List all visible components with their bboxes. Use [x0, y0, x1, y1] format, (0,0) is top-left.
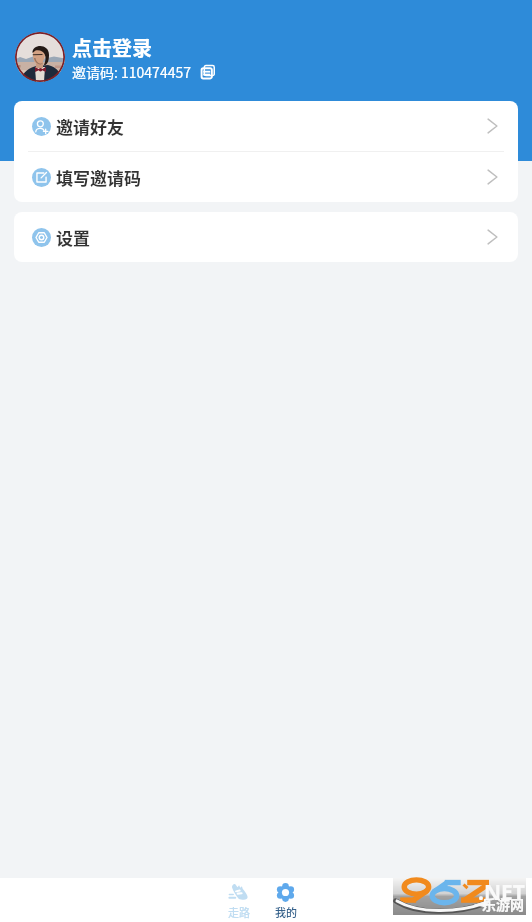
staticText: 走路 — [228, 904, 250, 920]
button[interactable]: Copy invite code — [200, 64, 216, 80]
staticText: 邀请好友 — [56, 114, 124, 139]
staticText: 乐游网 — [482, 894, 524, 914]
button[interactable]: 点击登录 — [72, 33, 152, 62]
staticText: 设置 — [56, 225, 90, 250]
staticText: 我的 — [275, 904, 297, 920]
staticText: 邀请码: 110474457 — [72, 62, 191, 82]
staticText: 填写邀请码 — [56, 165, 141, 190]
button[interactable]: Avatar — [15, 32, 65, 82]
staticText: .NET — [478, 878, 525, 907]
button[interactable]: 走路 — [215, 878, 262, 922]
button[interactable]: 我的 — [262, 878, 309, 922]
button[interactable]: 邀请好友 — [14, 101, 518, 151]
button[interactable]: 设置 — [14, 212, 518, 262]
button[interactable]: 填写邀请码 — [14, 152, 518, 202]
